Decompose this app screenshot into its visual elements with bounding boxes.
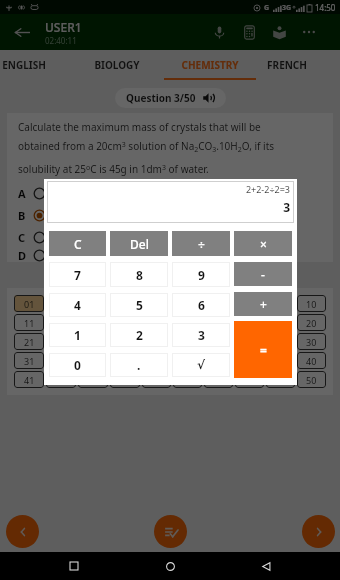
button[interactable]: 40 — [297, 352, 326, 369]
button[interactable]: Recent apps — [52, 552, 96, 580]
button[interactable]: Next question — [302, 515, 335, 548]
button[interactable]: 23 — [78, 333, 108, 350]
button[interactable]: 7 — [49, 262, 106, 287]
button[interactable]: 26 — [173, 333, 202, 350]
button[interactable]: 0 — [49, 353, 106, 377]
button[interactable]: B — [18, 204, 301, 226]
button[interactable]: 8 — [110, 262, 168, 287]
button[interactable]: 49 — [266, 371, 295, 388]
button[interactable]: 02 — [46, 295, 76, 312]
button[interactable]: Submit answers — [154, 515, 187, 548]
button[interactable]: 22 — [46, 333, 76, 350]
button[interactable]: Home — [148, 552, 192, 580]
button[interactable]: 05 — [142, 295, 171, 312]
staticText: FRENCH — [267, 58, 307, 72]
button[interactable]: 18 — [235, 314, 264, 331]
button[interactable]: Back — [0, 14, 44, 50]
button[interactable]: √ — [172, 353, 230, 377]
button[interactable]: 4 — [49, 293, 106, 317]
button[interactable]: 42 — [46, 371, 76, 388]
button[interactable]: 47 — [204, 371, 233, 388]
button[interactable]: 50 — [297, 371, 326, 388]
staticText: 3 — [283, 199, 290, 215]
button[interactable]: 13 — [78, 314, 108, 331]
button[interactable]: 41 — [14, 371, 44, 388]
button[interactable]: 1 — [49, 323, 106, 347]
staticText: 9 — [198, 267, 205, 283]
button[interactable]: 43 — [78, 371, 108, 388]
button[interactable]: 24 — [110, 333, 140, 350]
button[interactable]: C — [49, 231, 106, 256]
button[interactable]: More options — [294, 14, 324, 50]
staticText: 26 — [182, 336, 193, 348]
button[interactable]: 25 — [142, 333, 171, 350]
button[interactable]: 31 — [14, 352, 44, 369]
button[interactable]: Question 3/50 — [115, 88, 226, 108]
staticText: + — [260, 296, 267, 312]
button[interactable]: BIOLOGY — [70, 50, 163, 80]
button[interactable]: 36 — [173, 352, 202, 369]
button[interactable]: Del — [110, 231, 168, 256]
button[interactable]: CHEMISTRY — [163, 50, 256, 80]
button[interactable]: 28 — [235, 333, 264, 350]
button[interactable]: 06 — [173, 295, 202, 312]
button[interactable]: 09 — [266, 295, 295, 312]
staticText: 6 — [198, 297, 205, 313]
button[interactable]: 19 — [266, 314, 295, 331]
button[interactable]: 12 — [46, 314, 76, 331]
button[interactable]: 08 — [235, 295, 264, 312]
button[interactable]: 34 — [110, 352, 140, 369]
button[interactable]: 20 — [297, 314, 326, 331]
button[interactable]: 07 — [204, 295, 233, 312]
button[interactable]: 33 — [78, 352, 108, 369]
button[interactable]: 3 — [172, 323, 230, 347]
button[interactable]: × — [234, 231, 292, 256]
staticText: 3G — [282, 3, 292, 13]
button[interactable]: = — [234, 321, 292, 378]
button[interactable]: 04 — [110, 295, 140, 312]
button[interactable]: + — [234, 292, 292, 316]
button[interactable]: 39 — [266, 352, 295, 369]
button[interactable]: 6 — [172, 293, 230, 317]
button[interactable]: Back — [244, 552, 288, 580]
button[interactable]: 2 — [110, 323, 168, 347]
button[interactable]: Calculator — [234, 14, 264, 50]
button[interactable]: 9 — [172, 262, 230, 287]
button[interactable]: 32 — [46, 352, 76, 369]
button[interactable]: 29 — [266, 333, 295, 350]
button[interactable]: . — [110, 353, 168, 377]
button[interactable]: C — [18, 226, 301, 248]
button[interactable]: ENGLISH — [0, 50, 70, 80]
button[interactable]: 46 — [173, 371, 202, 388]
button[interactable]: Previous question — [6, 515, 39, 548]
button[interactable]: Library — [264, 14, 294, 50]
button[interactable]: D — [18, 248, 301, 262]
button[interactable]: 14 — [110, 314, 140, 331]
button[interactable]: 03 — [78, 295, 108, 312]
button[interactable]: 16 — [173, 314, 202, 331]
button[interactable]: 35 — [142, 352, 171, 369]
button[interactable]: - — [234, 262, 292, 286]
button[interactable]: 01 — [14, 295, 44, 312]
button[interactable]: ÷ — [172, 231, 230, 256]
button[interactable]: 11 — [14, 314, 44, 331]
button[interactable]: A — [18, 182, 301, 204]
button[interactable]: 38 — [235, 352, 264, 369]
staticText: 4 — [74, 297, 81, 313]
button[interactable]: 5 — [110, 293, 168, 317]
button[interactable]: 48 — [235, 371, 264, 388]
button[interactable]: 17 — [204, 314, 233, 331]
staticText: C — [74, 236, 82, 252]
button[interactable]: Voice input — [204, 14, 234, 50]
button[interactable]: 15 — [142, 314, 171, 331]
button[interactable]: 27 — [204, 333, 233, 350]
button[interactable]: 10 — [297, 295, 326, 312]
button[interactable]: 44 — [110, 371, 140, 388]
staticText: 31 — [24, 355, 35, 367]
button[interactable]: FRENCH — [256, 50, 317, 80]
button[interactable]: 30 — [297, 333, 326, 350]
staticText: 44 — [120, 374, 131, 386]
button[interactable]: 45 — [142, 371, 171, 388]
button[interactable]: 21 — [14, 333, 44, 350]
button[interactable]: 37 — [204, 352, 233, 369]
